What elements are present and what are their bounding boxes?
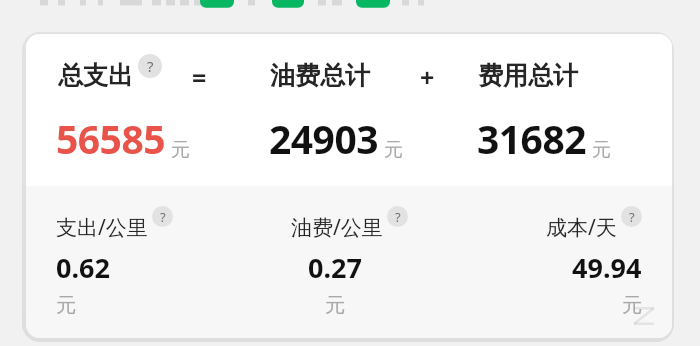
button[interactable]: 支出/公里 bbox=[56, 206, 252, 318]
staticText: ? bbox=[160, 208, 166, 226]
staticText: 总支出 bbox=[58, 60, 133, 91]
staticText: 56585 bbox=[56, 112, 166, 165]
button[interactable]: 成本/天 bbox=[447, 206, 642, 318]
button[interactable]: 帮助：总支出 bbox=[138, 54, 162, 78]
staticText: 元 bbox=[592, 138, 611, 162]
button[interactable]: 帮助：油费/公里 bbox=[387, 206, 408, 227]
staticText: 元 bbox=[325, 293, 345, 318]
staticText: 油费总计 bbox=[270, 60, 370, 91]
staticText: 24903 bbox=[269, 112, 379, 165]
staticText: 支出/公里 bbox=[56, 213, 148, 242]
staticText: 31682 bbox=[477, 112, 587, 165]
staticText: + bbox=[420, 60, 435, 94]
staticText: 成本/天 bbox=[546, 213, 617, 242]
staticText: ? bbox=[629, 208, 635, 226]
button[interactable]: 帮助：成本/天 bbox=[621, 206, 642, 227]
staticText: 元 bbox=[171, 138, 190, 162]
staticText: 油费/公里 bbox=[291, 213, 383, 242]
staticText: ? bbox=[395, 208, 401, 226]
staticText: 0.27 bbox=[308, 249, 362, 286]
staticText: 费用总计 bbox=[478, 60, 578, 91]
staticText: 0.62 bbox=[56, 249, 110, 286]
staticText: 49.94 bbox=[572, 249, 642, 286]
button[interactable]: 油费/公里 bbox=[252, 206, 447, 318]
staticText: = bbox=[192, 60, 207, 94]
button[interactable]: 帮助：支出/公里 bbox=[152, 206, 173, 227]
staticText: 元 bbox=[56, 293, 76, 318]
staticText: 元 bbox=[384, 138, 403, 162]
button[interactable]: 总支出 bbox=[26, 34, 672, 186]
staticText: ? bbox=[147, 56, 154, 76]
staticText: 元 bbox=[622, 293, 642, 318]
